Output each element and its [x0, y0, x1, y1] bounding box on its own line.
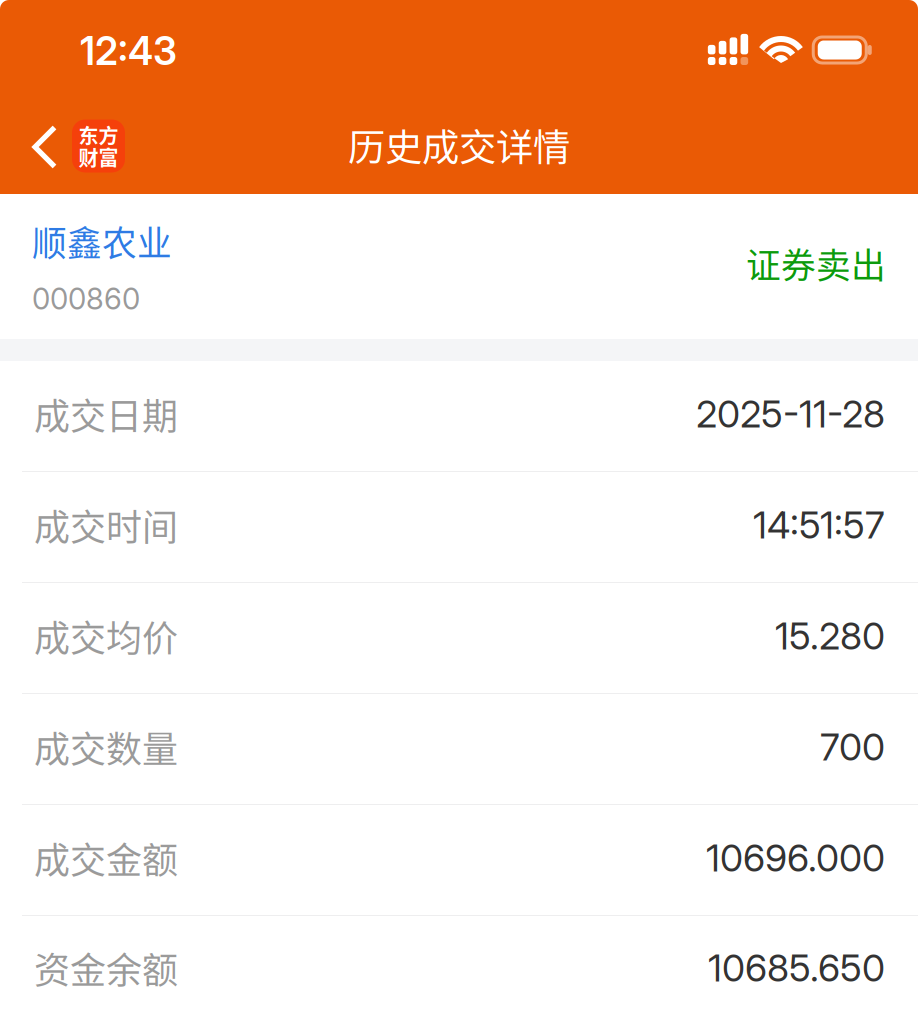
staticText: 12:43 [80, 28, 177, 74]
staticText: 证券卖出 [746, 238, 886, 289]
button[interactable]: 资金余额 [0, 916, 918, 1024]
staticText: 成交时间 [34, 499, 178, 551]
staticText: 成交均价 [34, 610, 178, 662]
staticText: 资金余额 [34, 942, 178, 994]
staticText: 财富 [78, 142, 118, 171]
button[interactable]: 成交日期 [0, 361, 918, 472]
staticText: 成交数量 [34, 721, 178, 773]
button[interactable]: 成交金额 [0, 805, 918, 916]
button[interactable]: Back [0, 96, 135, 194]
staticText: 顺鑫农业 [32, 216, 172, 266]
staticText: 700 [820, 724, 885, 770]
staticText: 历史成交详情 [348, 118, 570, 172]
button[interactable]: 成交数量 [0, 694, 918, 805]
staticText: 000860 [32, 281, 140, 316]
staticText: 15.280 [775, 613, 885, 659]
staticText: 成交金额 [34, 832, 178, 884]
staticText: 10685.650 [708, 945, 885, 991]
button[interactable]: 成交均价 [0, 583, 918, 694]
staticText: 成交日期 [34, 388, 178, 440]
button[interactable]: 成交时间 [0, 472, 918, 583]
staticText: 10696.000 [706, 835, 885, 881]
staticText: 14:51:57 [753, 502, 885, 548]
staticText: 东方 [78, 120, 118, 149]
staticText: 2025-11-28 [696, 391, 885, 437]
